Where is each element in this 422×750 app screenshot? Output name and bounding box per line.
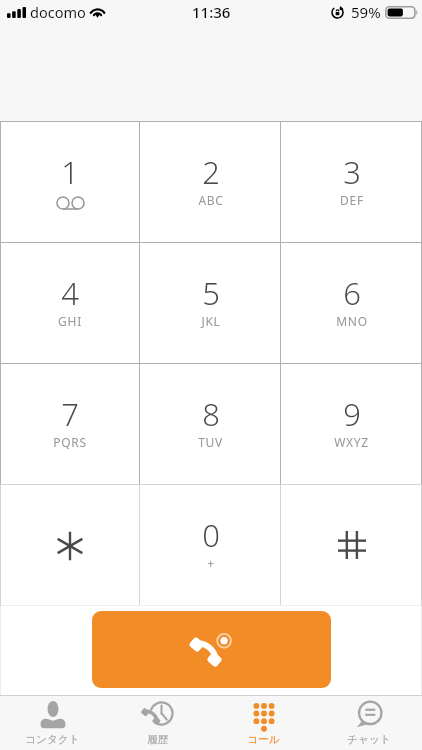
staticText: TUV xyxy=(198,434,223,450)
staticText: 2 xyxy=(202,151,220,193)
button[interactable] xyxy=(0,485,140,605)
staticText: 3 xyxy=(343,151,361,193)
staticText: docomo xyxy=(30,2,86,22)
button[interactable]: コール xyxy=(210,696,316,750)
staticText: PQRS xyxy=(53,434,87,450)
button[interactable]: 7 xyxy=(0,364,140,484)
staticText: 11:36 xyxy=(192,2,231,22)
staticText: DEF xyxy=(340,192,364,208)
staticText: JKL xyxy=(201,313,221,329)
staticText: 5 xyxy=(202,272,220,314)
staticText: 8 xyxy=(202,393,220,435)
staticText: コンタクト xyxy=(25,733,80,746)
button[interactable]: 履歴 xyxy=(105,696,210,750)
button[interactable]: Call xyxy=(92,611,331,688)
staticText: + xyxy=(207,555,215,571)
staticText: WXYZ xyxy=(334,434,369,450)
staticText: 9 xyxy=(343,393,361,435)
button[interactable]: コンタクト xyxy=(0,696,105,750)
staticText: 1 xyxy=(61,151,79,193)
staticText: チャット xyxy=(347,733,391,746)
button[interactable]: 9 xyxy=(281,364,422,484)
button[interactable]: 1 xyxy=(0,122,140,242)
button[interactable]: 0 xyxy=(140,485,281,605)
staticText: コール xyxy=(247,733,280,746)
button[interactable]: 3 xyxy=(281,122,422,242)
staticText: 59% xyxy=(351,2,381,22)
staticText: GHI xyxy=(58,313,82,329)
button[interactable]: 2 xyxy=(140,122,281,242)
button[interactable]: 4 xyxy=(0,243,140,363)
staticText: MNO xyxy=(336,313,368,329)
staticText: 4 xyxy=(61,272,79,314)
button[interactable]: 6 xyxy=(281,243,422,363)
button[interactable] xyxy=(281,485,422,605)
button[interactable]: 8 xyxy=(140,364,281,484)
staticText: 0 xyxy=(202,514,220,556)
staticText: 7 xyxy=(61,393,79,435)
staticText: 履歴 xyxy=(147,733,169,746)
staticText: 6 xyxy=(343,272,361,314)
button[interactable]: チャット xyxy=(316,696,422,750)
staticText: ABC xyxy=(198,192,224,208)
button[interactable]: 5 xyxy=(140,243,281,363)
